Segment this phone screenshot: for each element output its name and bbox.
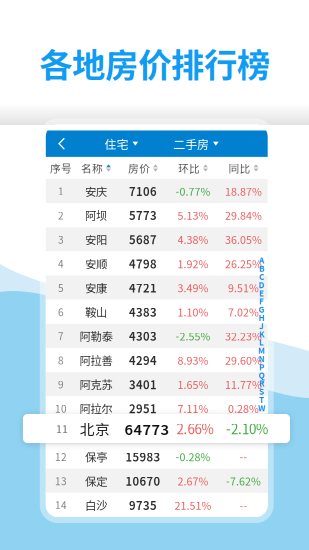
staticText: B [259,262,264,274]
staticText: G [258,303,264,315]
staticText: 4.38% [177,232,208,247]
button[interactable]: A [256,256,267,264]
button[interactable]: 同比 [213,157,273,179]
staticText: 7.11% [177,401,208,416]
button[interactable]: 二手房 [165,130,227,157]
staticText: 8.93% [177,352,208,368]
staticText: 阿拉善 [79,352,112,368]
button[interactable]: S [256,387,267,395]
button[interactable]: K [256,330,267,338]
staticText: A [259,254,264,266]
button[interactable]: J [256,322,267,330]
button[interactable]: G [256,305,267,313]
staticText: 0.28% [228,401,259,416]
button[interactable]: E [256,289,267,297]
staticText: 鞍山 [85,304,107,320]
staticText: 环比 [178,160,200,176]
staticText: 5687 [129,231,157,247]
staticText: D [258,279,264,290]
staticText: 安阳 [85,231,107,247]
staticText: -7.62% [226,473,261,488]
staticText: -2.55% [175,328,210,344]
button[interactable]: 2 [46,203,268,227]
button[interactable]: 12 [46,445,268,469]
button[interactable]: 9 [46,372,268,396]
staticText: 名称 [81,160,103,176]
button[interactable]: L [256,338,267,346]
button[interactable]: N [256,354,267,363]
staticText: 11.77% [225,376,262,392]
staticText: 36.05% [225,232,262,247]
staticText: H [258,312,264,323]
button[interactable]: 6 [46,300,268,324]
button[interactable]: C [256,272,267,281]
button[interactable]: W [256,404,267,412]
staticText: P [259,361,264,372]
staticText: 2 [58,208,64,222]
staticText: N [258,353,264,364]
staticText: 2951 [129,400,157,417]
staticText: 10 [55,401,67,416]
button[interactable]: 环比 [163,157,223,179]
staticText: 1.10% [177,304,208,319]
button[interactable]: B [256,264,267,272]
staticText: E [259,287,264,299]
button[interactable]: 序号 [31,157,91,179]
staticText: 5 [58,280,64,295]
button[interactable]: D [256,281,267,289]
staticText: -- [239,449,247,464]
staticText: -- [239,497,247,513]
staticText: 保亭 [85,448,107,465]
button[interactable]: P [256,363,267,371]
button[interactable]: 11 [46,420,268,445]
staticText: 4294 [129,352,157,368]
staticText: 各地房价排行榜 [39,39,270,87]
staticText: 二手房 [173,135,209,152]
button[interactable]: R [256,379,267,387]
staticText: 3.49% [177,280,208,295]
staticText: K [259,328,264,340]
button[interactable]: 14 [46,493,268,517]
staticText: 12 [55,449,67,464]
staticText: -2.10% [226,425,261,440]
button[interactable]: 11 [23,414,290,443]
staticText: 阿克苏 [79,376,112,392]
staticText: 3 [58,232,64,247]
staticText: 保定 [85,473,107,489]
button[interactable]: 13 [46,469,268,493]
button[interactable]: 3 [46,227,268,251]
button[interactable]: 8 [46,348,268,372]
button[interactable]: 5 [46,276,268,300]
staticText: 4 [58,256,64,271]
button[interactable]: 1 [46,179,268,203]
staticText: 3401 [129,376,157,392]
staticText: 64773 [124,418,169,439]
button[interactable]: Back [49,130,75,157]
staticText: 住宅 [104,135,128,152]
staticText: 6 [58,304,64,319]
button[interactable]: 7 [46,324,268,348]
staticText: 4798 [129,255,157,272]
staticText: R [259,377,264,389]
button[interactable]: T [256,395,267,404]
button[interactable]: F [256,297,267,305]
staticText: 32.23% [225,328,262,344]
staticText: 安顺 [85,255,107,272]
button[interactable]: Q [256,371,267,379]
button[interactable]: 房价 [113,157,173,179]
staticText: 房价 [128,160,150,176]
staticText: 4383 [129,304,157,320]
button[interactable]: 住宅 [92,130,150,157]
button[interactable]: 4 [46,251,268,275]
staticText: F [259,295,264,307]
button[interactable]: H [256,313,267,322]
staticText: 白沙 [85,497,107,513]
staticText: 同比 [229,160,251,176]
staticText: 64773 [125,424,160,441]
button[interactable]: M [256,346,267,354]
staticText: W [258,402,265,413]
button[interactable]: 名称 [66,157,126,179]
staticText: 9 [58,377,64,391]
button[interactable]: 10 [46,396,268,420]
staticText: Q [258,369,264,381]
